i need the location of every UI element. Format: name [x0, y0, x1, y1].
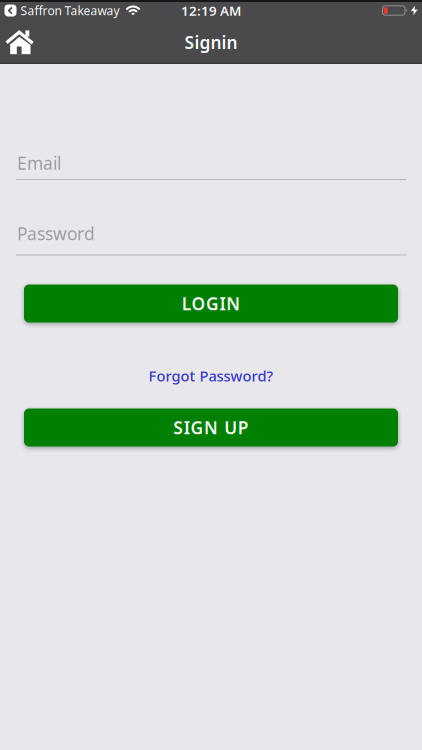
- button[interactable]: Back to Saffron Takeaway: [4, 2, 119, 18]
- staticText: SIGN UP: [173, 416, 249, 439]
- staticText: Password: [17, 222, 95, 245]
- button[interactable]: SIGN UP: [24, 408, 398, 446]
- staticText: LOGIN: [182, 292, 240, 315]
- button[interactable]: LOGIN: [24, 284, 398, 322]
- button[interactable]: Home: [0, 30, 34, 55]
- staticText: Signin: [184, 31, 237, 54]
- staticText: Saffron Takeaway: [20, 2, 119, 18]
- staticText: Email: [17, 151, 61, 174]
- staticText: Forgot Password?: [148, 366, 273, 385]
- staticText: 12:19 AM: [181, 2, 241, 19]
- button[interactable]: Forgot Password?: [148, 366, 273, 385]
